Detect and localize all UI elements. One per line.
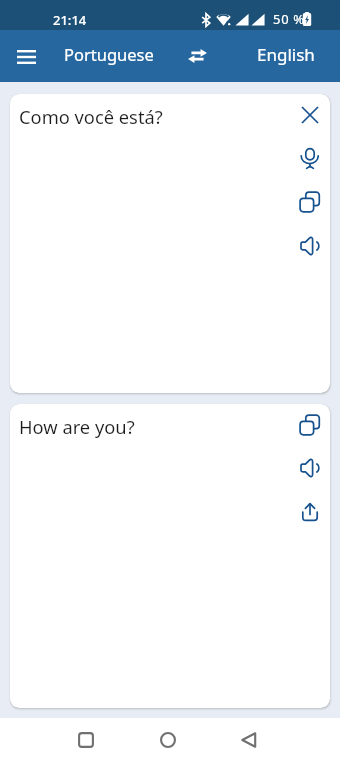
button[interactable]: Swap languages — [174, 30, 220, 82]
button[interactable]: Portuguese — [52, 30, 170, 82]
staticText: Como você está? — [19, 104, 279, 129]
button[interactable]: Speak — [288, 136, 330, 180]
button[interactable]: Copy — [288, 404, 330, 446]
button[interactable]: Listen — [288, 224, 330, 268]
button[interactable]: English — [240, 30, 340, 82]
button[interactable]: Back — [221, 718, 277, 760]
staticText: 21:14 — [53, 11, 87, 29]
staticText: English — [257, 43, 315, 66]
staticText: 50 % — [273, 10, 305, 28]
button[interactable]: Listen — [288, 446, 330, 490]
button[interactable]: Open navigation menu — [0, 30, 52, 82]
button[interactable]: Share — [288, 490, 330, 534]
staticText: Portuguese — [64, 43, 154, 65]
button[interactable]: Recent apps — [58, 718, 114, 760]
staticText: How are you? — [19, 414, 279, 439]
button[interactable]: Clear text — [288, 94, 330, 136]
button[interactable]: Home — [140, 718, 196, 760]
button[interactable]: Copy — [288, 180, 330, 224]
